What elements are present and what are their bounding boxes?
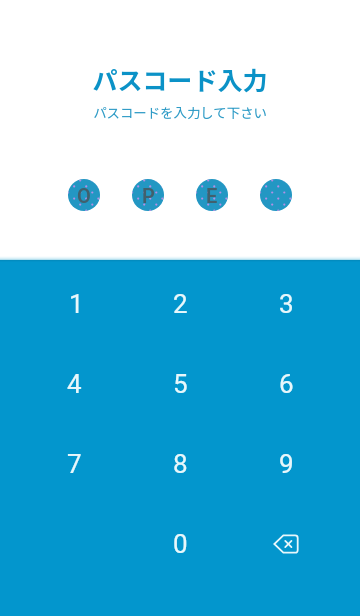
staticText: 4: [67, 369, 82, 399]
staticText: E: [206, 184, 218, 207]
button[interactable]: 5: [127, 341, 233, 426]
staticText: パスコード入力: [92, 61, 268, 97]
staticText: 6: [279, 369, 294, 399]
button[interactable]: 1: [21, 261, 127, 346]
staticText: 8: [173, 449, 188, 479]
staticText: 2: [173, 289, 188, 319]
staticText: 9: [279, 449, 294, 479]
button[interactable]: 6: [233, 341, 339, 426]
staticText: 3: [279, 289, 294, 319]
staticText: 7: [67, 449, 82, 479]
button[interactable]: Backspace: [233, 501, 339, 586]
staticText: 5: [173, 369, 188, 399]
staticText: パスコードを入力して下さい: [93, 102, 267, 121]
button[interactable]: 8: [127, 421, 233, 506]
button[interactable]: 7: [21, 421, 127, 506]
button[interactable]: 4: [21, 341, 127, 426]
staticText: 0: [173, 529, 188, 559]
button[interactable]: 2: [127, 261, 233, 346]
staticText: P: [142, 184, 155, 207]
button[interactable]: 0: [127, 501, 233, 586]
button[interactable]: 9: [233, 421, 339, 506]
staticText: 1: [69, 289, 84, 319]
staticText: O: [77, 184, 91, 207]
button[interactable]: 3: [233, 261, 339, 346]
